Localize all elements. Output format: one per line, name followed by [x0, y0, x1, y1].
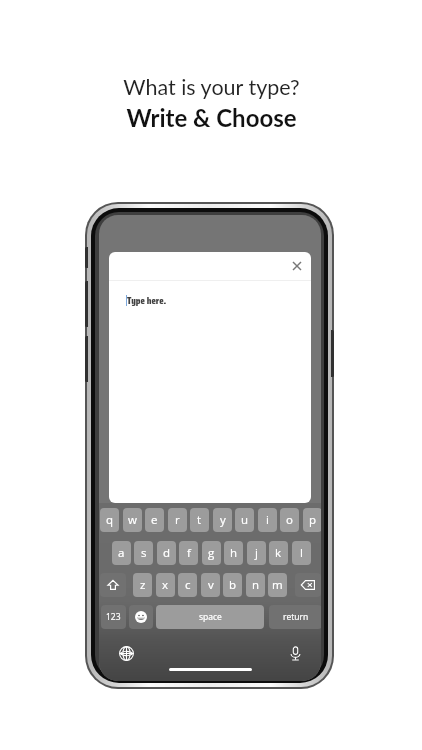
staticText: g	[208, 545, 215, 561]
button[interactable]: Emoji	[129, 605, 153, 629]
staticText: e	[151, 512, 158, 528]
button[interactable]: i	[258, 508, 277, 532]
button[interactable]: k	[269, 541, 288, 565]
staticText: r	[175, 512, 180, 528]
button[interactable]: n	[246, 573, 265, 597]
staticText: w	[128, 512, 137, 528]
button[interactable]: z	[133, 573, 152, 597]
button[interactable]: g	[202, 541, 221, 565]
button[interactable]: Close	[288, 257, 306, 275]
staticText: j	[255, 545, 258, 561]
staticText: n	[252, 577, 260, 593]
button[interactable]: m	[268, 573, 287, 597]
staticText: c	[185, 577, 191, 593]
button[interactable]: e	[145, 508, 164, 532]
button[interactable]: j	[247, 541, 266, 565]
button[interactable]: c	[178, 573, 197, 597]
staticText: 123	[106, 611, 121, 623]
staticText: l	[300, 545, 303, 561]
staticText: o	[286, 512, 293, 528]
staticText: d	[163, 545, 171, 561]
staticText: q	[106, 512, 114, 528]
button[interactable]: f	[179, 541, 198, 565]
button[interactable]: h	[224, 541, 243, 565]
staticText: What is your type?	[123, 74, 300, 100]
button[interactable]: q	[100, 508, 119, 532]
staticText: u	[241, 512, 249, 528]
staticText: f	[187, 545, 191, 561]
button[interactable]: return	[269, 605, 321, 629]
staticText: space	[199, 611, 222, 623]
staticText: y	[220, 512, 226, 528]
button[interactable]: r	[168, 508, 187, 532]
staticText: Type here.	[127, 292, 167, 308]
button[interactable]: u	[235, 508, 254, 532]
button[interactable]: y	[213, 508, 232, 532]
staticText: z	[140, 577, 146, 593]
staticText: h	[230, 545, 238, 561]
staticText: i	[266, 512, 269, 528]
button[interactable]: Voice input	[286, 644, 304, 662]
button[interactable]: l	[292, 541, 311, 565]
button[interactable]: space	[156, 605, 264, 629]
button[interactable]: p	[303, 508, 321, 532]
staticText: k	[275, 545, 282, 561]
button[interactable]: t	[190, 508, 209, 532]
staticText: s	[141, 545, 147, 561]
button[interactable]: v	[201, 573, 220, 597]
staticText: x	[162, 577, 169, 593]
staticText: return	[283, 611, 309, 623]
button[interactable]: d	[157, 541, 176, 565]
staticText: v	[208, 577, 214, 593]
button[interactable]: a	[112, 541, 131, 565]
button[interactable]: b	[223, 573, 242, 597]
button[interactable]: Change keyboard	[117, 644, 135, 662]
button[interactable]: Backspace	[295, 573, 321, 597]
staticText: Write & Choose	[126, 103, 297, 132]
staticText: t	[197, 512, 202, 528]
button[interactable]: o	[280, 508, 299, 532]
staticText: p	[309, 512, 317, 528]
staticText: a	[118, 545, 125, 561]
button[interactable]: w	[123, 508, 142, 532]
button[interactable]: x	[156, 573, 175, 597]
button[interactable]: Shift	[100, 573, 126, 597]
staticText: b	[229, 577, 237, 593]
staticText: m	[272, 577, 283, 593]
button[interactable]: Numbers	[101, 605, 126, 629]
button[interactable]: s	[134, 541, 153, 565]
